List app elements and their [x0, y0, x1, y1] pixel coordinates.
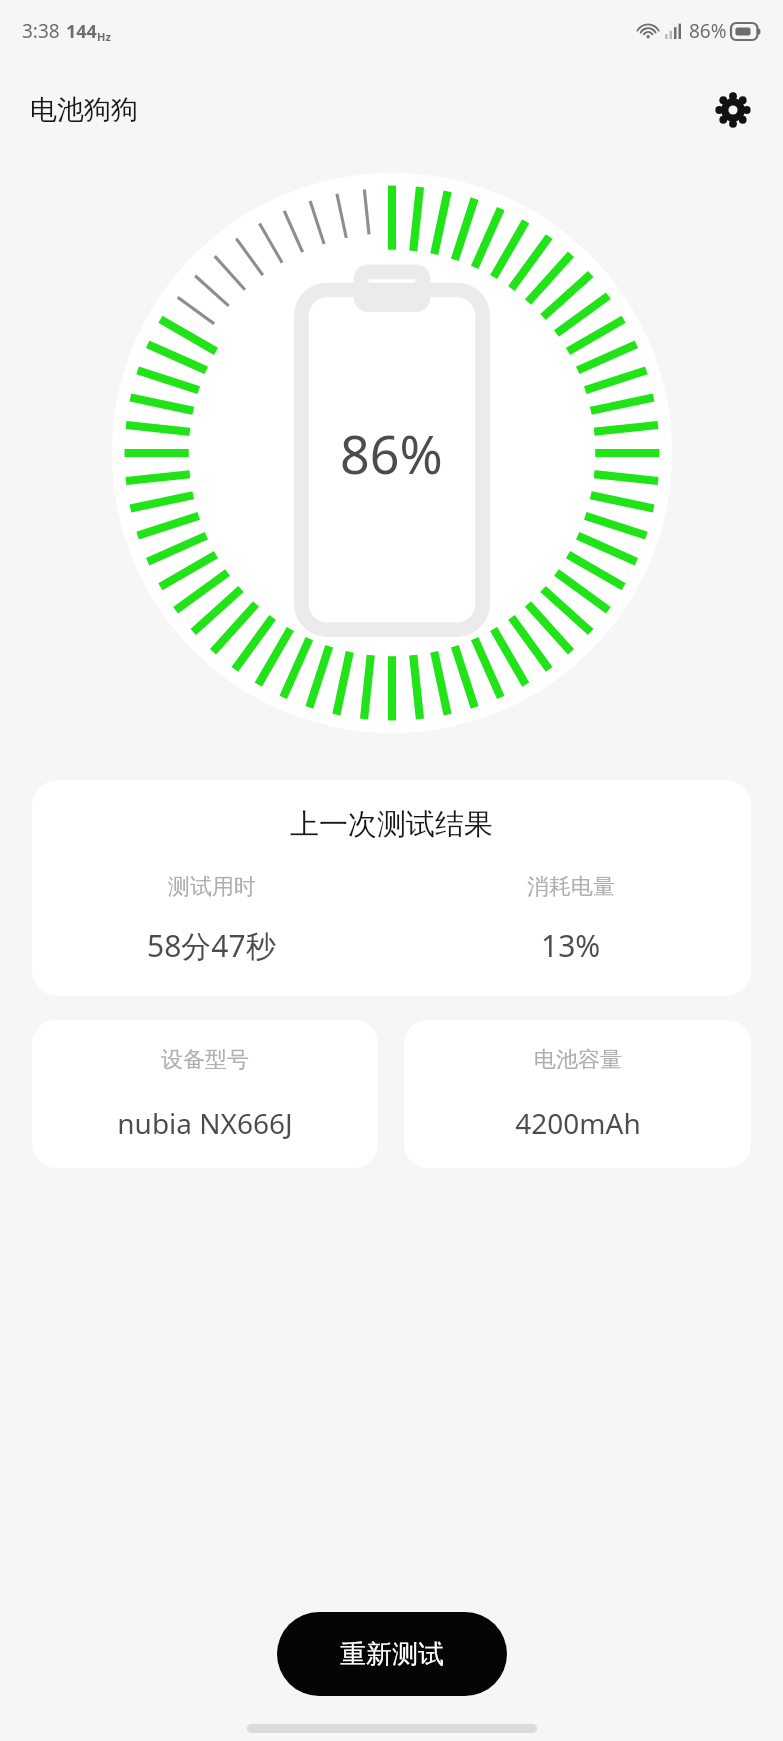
staticText: 消耗电量: [527, 873, 615, 901]
button[interactable]: 电池容量: [404, 1020, 751, 1168]
button[interactable]: Settings: [705, 82, 761, 138]
staticText: 电池狗狗: [30, 93, 138, 127]
staticText: 上一次测试结果: [32, 806, 751, 843]
staticText: Hz: [97, 29, 111, 44]
button[interactable]: 设备型号: [32, 1020, 378, 1168]
staticText: 13%: [541, 925, 601, 966]
staticText: nubia NX666J: [117, 1104, 293, 1142]
staticText: 电池容量: [534, 1046, 622, 1074]
staticText: 测试用时: [168, 873, 256, 901]
staticText: 4200mAh: [515, 1104, 641, 1142]
staticText: 144: [66, 19, 97, 44]
staticText: 58分47秒: [147, 925, 276, 966]
staticText: 86%: [340, 418, 443, 489]
button[interactable]: 重新测试: [277, 1612, 507, 1696]
staticText: 重新测试: [340, 1638, 444, 1671]
staticText: 86%: [689, 18, 727, 44]
staticText: 3:38: [22, 18, 60, 44]
staticText: 设备型号: [161, 1046, 249, 1074]
button[interactable]: 上一次测试结果: [32, 780, 751, 996]
